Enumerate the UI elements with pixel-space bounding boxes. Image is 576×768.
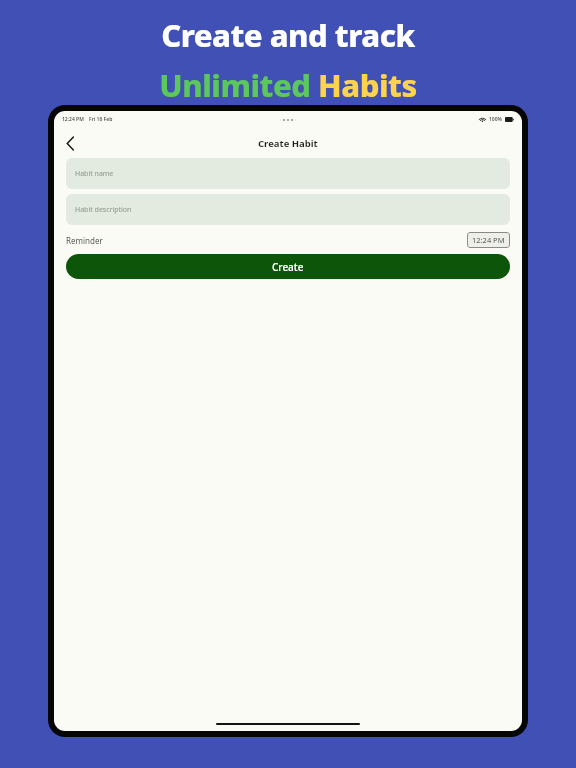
staticText: Create and track	[0, 14, 576, 56]
staticText: 12:24 PM	[472, 235, 505, 245]
staticText: Create Habit	[258, 137, 318, 150]
staticText: Unlimited Habits	[0, 64, 576, 106]
staticText: Habit description	[75, 205, 132, 215]
staticText: Habit name	[75, 169, 114, 179]
staticText: Fri 16 Feb	[89, 116, 113, 123]
button[interactable]: Create	[66, 254, 510, 279]
button[interactable]: 12:24 PM	[467, 232, 510, 248]
button[interactable]: Habit description	[66, 194, 510, 225]
staticText: 12:24 PM	[62, 116, 84, 123]
button[interactable]: Back	[58, 131, 82, 155]
staticText: Create	[272, 260, 304, 274]
staticText: 100%	[489, 116, 502, 123]
button[interactable]: Habit name	[66, 158, 510, 189]
staticText: Reminder	[66, 235, 103, 246]
